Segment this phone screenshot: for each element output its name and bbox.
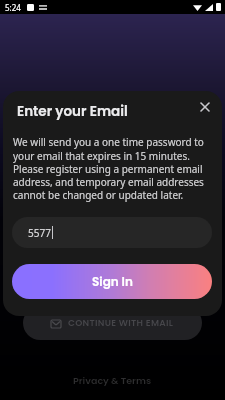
staticText: 5577: [28, 226, 51, 240]
staticText: CONTINUE WITH EMAIL: [68, 317, 174, 330]
button[interactable]: Close: [192, 94, 217, 119]
button[interactable]: CONTINUE WITH EMAIL: [23, 306, 202, 340]
staticText: Enter your Email: [17, 102, 128, 121]
button[interactable]: Sign In: [12, 264, 212, 299]
button[interactable]: 5577: [12, 217, 212, 248]
staticText: 5:24: [5, 2, 21, 13]
staticText: Sign In: [92, 273, 133, 290]
button[interactable]: Privacy & Terms: [73, 374, 152, 387]
staticText: We will send you a one time password to …: [13, 135, 215, 202]
